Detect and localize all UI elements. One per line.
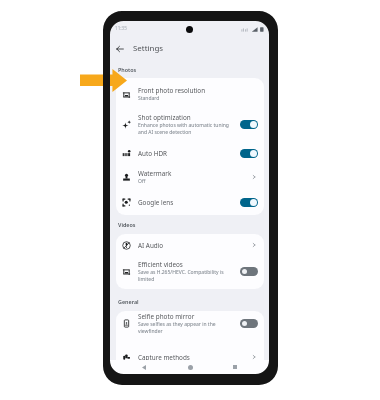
button[interactable]: Switch on	[240, 149, 258, 158]
staticText: Videos	[118, 221, 136, 228]
staticText: Efficient videos	[138, 260, 183, 269]
staticText: AI Audio	[138, 241, 164, 250]
button[interactable]: Recent apps	[227, 360, 243, 374]
staticText: Selfie photo mirror	[138, 312, 195, 321]
button[interactable]: Auto HDR	[116, 138, 264, 168]
staticText: Save selfies as they appear in the viewf…	[138, 321, 237, 334]
button[interactable]: Back	[113, 42, 126, 55]
staticText: Capture methods	[138, 353, 190, 362]
staticText: Standard	[138, 95, 160, 102]
staticText: Enhance photos with automatic tuning and…	[138, 122, 237, 135]
button[interactable]: Home	[182, 360, 198, 374]
staticText: General	[118, 298, 139, 305]
button[interactable]: Back	[136, 360, 152, 374]
staticText: Google lens	[138, 198, 174, 207]
button[interactable]: Google lens	[116, 187, 264, 217]
button[interactable]: Front photo resolution	[116, 79, 264, 109]
staticText: Shot optimization	[138, 113, 191, 122]
staticText: Off	[138, 178, 146, 185]
staticText: Save as H.265/HEVC. Compatibility is lim…	[138, 269, 237, 282]
button[interactable]: Switch on	[240, 198, 258, 207]
button[interactable]: Switch on	[240, 120, 258, 129]
button[interactable]: Switch off	[240, 267, 258, 276]
staticText: Front photo resolution	[138, 86, 206, 95]
button[interactable]: AI Audio	[116, 230, 264, 260]
button[interactable]: Selfie photo mirror	[116, 308, 264, 338]
staticText: Auto HDR	[138, 149, 168, 158]
button[interactable]: Efficient videos	[116, 256, 264, 286]
staticText: Settings	[133, 43, 164, 54]
staticText: 11:35	[115, 25, 127, 31]
staticText: Photos	[118, 66, 137, 73]
button[interactable]: Switch off	[240, 319, 258, 328]
button[interactable]: Shot optimization	[116, 109, 264, 139]
button[interactable]: Capture methods	[116, 342, 264, 372]
button[interactable]: Watermark	[116, 162, 264, 192]
staticText: Watermark	[138, 169, 172, 178]
